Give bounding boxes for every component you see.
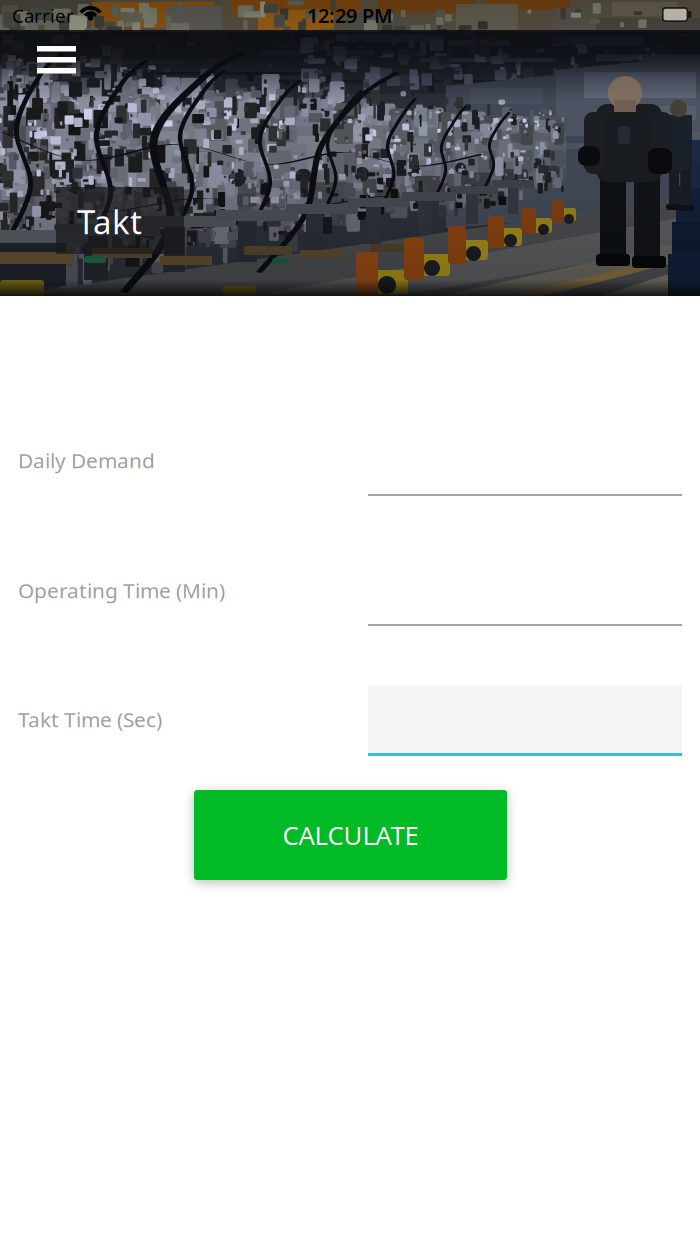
button[interactable]: CALCULATE xyxy=(194,790,507,880)
staticText: Carrier xyxy=(12,3,74,28)
button[interactable]: Menu xyxy=(24,34,88,84)
staticText: Takt xyxy=(77,199,142,244)
staticText: Daily Demand xyxy=(18,446,155,474)
staticText: CALCULATE xyxy=(282,817,418,852)
staticText: Operating Time (Min) xyxy=(18,576,225,604)
staticText: 12:29 PM xyxy=(307,2,393,29)
staticText: Takt Time (Sec) xyxy=(18,705,162,733)
